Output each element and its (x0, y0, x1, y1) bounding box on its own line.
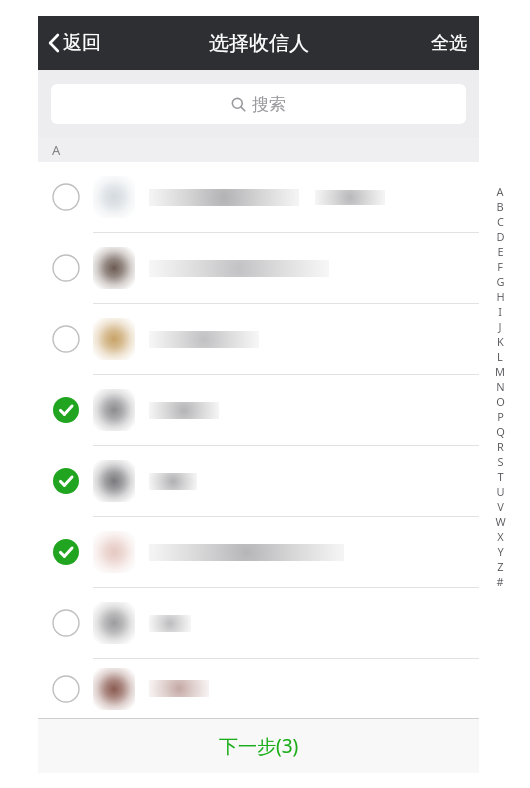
staticText: G (496, 274, 505, 289)
button[interactable] (38, 162, 479, 232)
staticText: J (498, 319, 502, 334)
staticText: 返回 (63, 31, 101, 55)
staticText: Y (497, 544, 504, 559)
button[interactable] (38, 517, 479, 587)
staticText: O (496, 394, 505, 409)
staticText: # (496, 574, 504, 589)
staticText: H (496, 289, 505, 304)
button[interactable]: 返回 (38, 25, 111, 61)
staticText: U (496, 484, 505, 499)
staticText: X (497, 529, 504, 544)
staticText: F (497, 259, 503, 274)
button[interactable]: 全选 (419, 24, 479, 63)
button[interactable]: 下一步(3) (38, 718, 479, 773)
button[interactable]: Alphabet index (490, 184, 510, 589)
staticText: K (497, 334, 504, 349)
staticText: M (495, 364, 505, 379)
staticText: B (496, 199, 504, 214)
staticText: I (498, 304, 502, 319)
button[interactable] (38, 375, 479, 445)
staticText: Q (496, 424, 505, 439)
button[interactable] (38, 446, 479, 516)
staticText: S (497, 454, 504, 469)
button[interactable] (38, 233, 479, 303)
staticText: Z (497, 559, 504, 574)
staticText: 下一步(3) (219, 733, 299, 759)
button[interactable] (38, 304, 479, 374)
staticText: L (497, 349, 503, 364)
staticText: A (496, 184, 504, 199)
staticText: 选择收信人 (209, 31, 309, 56)
staticText: D (496, 229, 505, 244)
staticText: R (497, 439, 504, 454)
staticText: V (497, 499, 504, 514)
staticText: C (497, 214, 504, 229)
staticText: E (497, 244, 504, 259)
staticText: P (497, 409, 504, 424)
staticText: N (496, 379, 505, 394)
button[interactable] (38, 588, 479, 658)
staticText: T (497, 469, 504, 484)
staticText: 搜索 (252, 94, 286, 115)
staticText: W (495, 514, 506, 529)
staticText: 全选 (431, 32, 467, 55)
button[interactable]: 搜索 (51, 84, 466, 124)
button[interactable] (38, 659, 479, 718)
staticText: A (52, 141, 61, 159)
